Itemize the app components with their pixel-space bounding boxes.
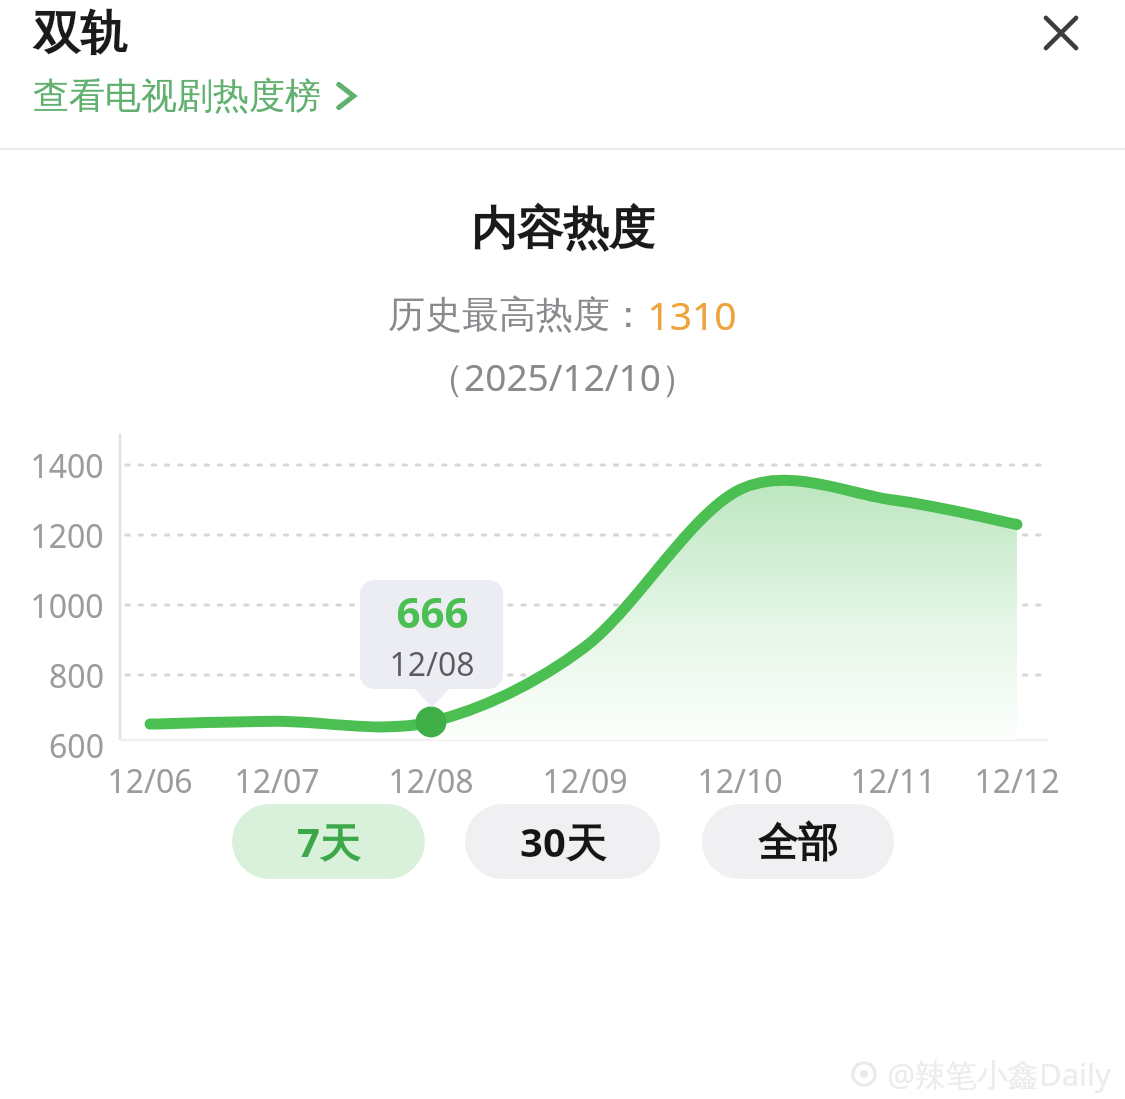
staticText: 1200 (30, 514, 104, 558)
staticText: 12/12 (974, 759, 1060, 803)
staticText: 12/08 (388, 759, 474, 803)
staticText: 7天 (297, 814, 360, 869)
staticText: 12/06 (107, 759, 193, 803)
button[interactable]: 7天 (232, 804, 425, 879)
staticText: 1310 (647, 288, 737, 341)
button[interactable]: 30天 (465, 804, 660, 879)
staticText: 全部 (758, 817, 838, 867)
staticText: 内容热度 (471, 200, 655, 258)
button[interactable]: 666 (360, 580, 503, 689)
staticText: 666 (396, 583, 469, 640)
staticText: 1000 (30, 584, 104, 628)
staticText: 12/08 (389, 642, 475, 686)
staticText: （2025/12/10） (427, 351, 698, 402)
staticText: 600 (49, 724, 104, 768)
staticText: 历史最高热度： (388, 291, 647, 338)
staticText: @辣笔小鑫Daily (887, 1053, 1111, 1095)
button[interactable]: Close (1033, 5, 1089, 61)
staticText: 12/07 (234, 759, 320, 803)
button[interactable]: 查看电视剧热度榜 (33, 73, 366, 118)
staticText: 12/10 (697, 759, 783, 803)
staticText: 双轨 (33, 4, 127, 63)
staticText: 800 (49, 654, 104, 698)
staticText: 30天 (520, 814, 606, 869)
staticText: 12/11 (850, 759, 936, 803)
staticText: 查看电视剧热度榜 (33, 73, 321, 118)
button[interactable]: 全部 (702, 804, 894, 879)
staticText: 1400 (30, 444, 104, 488)
staticText: 12/09 (542, 759, 628, 803)
